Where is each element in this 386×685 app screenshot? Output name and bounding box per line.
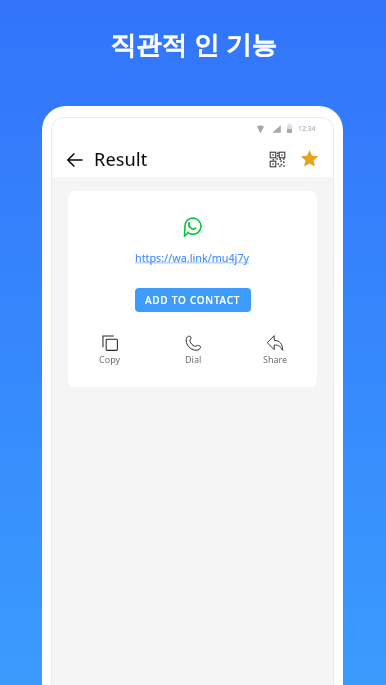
staticText: Dial: [185, 353, 202, 365]
button[interactable]: Favorite: [294, 145, 324, 175]
button[interactable]: Scan QR code: [262, 145, 292, 175]
button[interactable]: Share: [246, 335, 304, 365]
staticText: Result: [94, 147, 148, 172]
staticText: 12:34: [298, 124, 316, 133]
staticText: 직관적 인 기능: [110, 27, 277, 62]
button[interactable]: https://wa.link/mu4j7y: [135, 250, 250, 265]
button[interactable]: Back: [59, 144, 91, 176]
button[interactable]: ADD TO CONTACT: [135, 288, 251, 312]
staticText: Copy: [99, 353, 121, 365]
button[interactable]: Copy: [81, 335, 139, 365]
staticText: ADD TO CONTACT: [145, 293, 241, 307]
staticText: Share: [263, 353, 288, 365]
button[interactable]: Dial: [164, 335, 222, 365]
